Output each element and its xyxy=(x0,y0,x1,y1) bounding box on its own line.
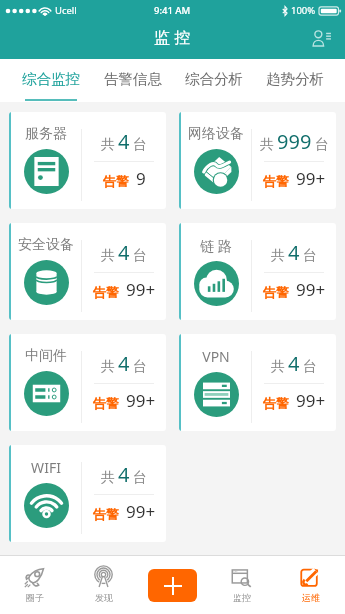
staticText: 告警 xyxy=(263,284,289,300)
staticText: 综合监控 xyxy=(22,70,80,88)
staticText: 9:41 AM xyxy=(154,4,191,17)
staticText: 共 xyxy=(101,247,115,265)
button[interactable]: 综合监控 xyxy=(10,59,92,102)
button[interactable]: Contacts xyxy=(306,23,336,53)
button[interactable]: 网络设备 xyxy=(179,112,336,209)
staticText: 共 xyxy=(101,469,115,487)
button[interactable]: 趋势分析 xyxy=(254,59,335,102)
staticText: 安全设备 xyxy=(18,236,74,254)
staticText: 告警 xyxy=(103,173,129,189)
staticText: 综合分析 xyxy=(185,70,243,88)
staticText: 运维 xyxy=(302,592,320,603)
button[interactable]: 综合分析 xyxy=(173,59,254,102)
staticText: 4 xyxy=(118,350,130,377)
button[interactable]: 安全设备 xyxy=(9,223,166,320)
button[interactable]: 链 路 xyxy=(179,223,336,320)
staticText: 监 控 xyxy=(154,26,191,48)
button[interactable]: 告警信息 xyxy=(92,59,173,102)
staticText: 4 xyxy=(118,239,130,266)
staticText: 4 xyxy=(288,239,300,266)
button[interactable]: 监控 xyxy=(207,555,276,614)
staticText: 监控 xyxy=(233,592,251,603)
staticText: 台 xyxy=(315,136,329,154)
staticText: 99+ xyxy=(296,167,326,190)
staticText: 共 xyxy=(271,247,285,265)
staticText: Ucell xyxy=(55,4,77,17)
staticText: WIFI xyxy=(31,458,61,477)
staticText: 99+ xyxy=(126,389,156,412)
button[interactable]: 发现 xyxy=(69,555,138,614)
staticText: 圈子 xyxy=(26,592,44,603)
staticText: 链 路 xyxy=(200,236,232,255)
button[interactable]: 中间件 xyxy=(9,334,166,431)
staticText: 共 xyxy=(101,358,115,376)
staticText: 中间件 xyxy=(25,347,67,365)
button[interactable]: 圈子 xyxy=(0,555,69,614)
staticText: 4 xyxy=(118,461,130,488)
staticText: 99+ xyxy=(126,278,156,301)
staticText: 告警 xyxy=(263,395,289,411)
button[interactable]: Add xyxy=(148,569,197,602)
staticText: 共 xyxy=(101,136,115,154)
staticText: 台 xyxy=(133,247,147,265)
staticText: 4 xyxy=(118,128,130,155)
staticText: 发现 xyxy=(95,592,113,603)
staticText: 4 xyxy=(288,350,300,377)
staticText: 100% xyxy=(291,4,316,17)
staticText: 告警 xyxy=(263,173,289,189)
staticText: 99+ xyxy=(126,500,156,523)
staticText: VPN xyxy=(202,347,230,366)
staticText: 台 xyxy=(303,358,317,376)
staticText: 告警 xyxy=(93,506,119,522)
staticText: 台 xyxy=(303,247,317,265)
button[interactable]: WIFI xyxy=(9,445,166,542)
staticText: 99+ xyxy=(296,278,326,301)
staticText: 999 xyxy=(277,128,312,155)
staticText: 服务器 xyxy=(25,125,67,143)
staticText: 共 xyxy=(271,358,285,376)
staticText: 趋势分析 xyxy=(266,70,324,88)
staticText: 告警信息 xyxy=(104,70,162,88)
staticText: 共 xyxy=(260,136,274,154)
staticText: 台 xyxy=(133,136,147,154)
button[interactable]: 运维 xyxy=(276,555,345,614)
staticText: 99+ xyxy=(296,389,326,412)
staticText: 网络设备 xyxy=(188,125,244,143)
button[interactable]: 服务器 xyxy=(9,112,166,209)
staticText: 台 xyxy=(133,358,147,376)
button[interactable]: VPN xyxy=(179,334,336,431)
staticText: 告警 xyxy=(93,395,119,411)
staticText: 告警 xyxy=(93,284,119,300)
staticText: 台 xyxy=(133,469,147,487)
staticText: 9 xyxy=(136,167,146,190)
